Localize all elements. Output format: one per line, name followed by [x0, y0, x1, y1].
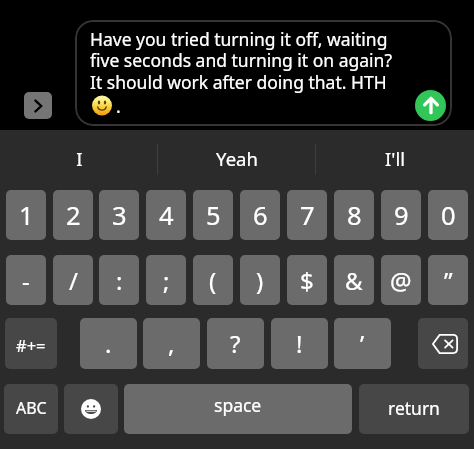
button[interactable]: I'll — [316, 130, 474, 187]
button[interactable]: Backspace — [418, 318, 468, 369]
staticText: space — [214, 393, 262, 417]
button[interactable]: 3 — [99, 190, 139, 240]
staticText: : — [116, 264, 123, 297]
button[interactable]: 2 — [53, 190, 93, 240]
staticText: / — [69, 264, 78, 297]
button[interactable]: space — [124, 384, 352, 434]
staticText: I'll — [385, 146, 405, 171]
staticText: . — [116, 94, 121, 118]
button[interactable]: Send — [415, 90, 446, 121]
button[interactable]: ABC — [4, 384, 58, 434]
staticText: 2 — [66, 198, 81, 233]
staticText: $ — [300, 264, 314, 297]
staticText: #+= — [16, 334, 46, 356]
button[interactable]: #+= — [5, 318, 57, 369]
staticText: @ — [390, 264, 412, 297]
button[interactable]: . — [80, 318, 137, 369]
staticText: . — [105, 327, 112, 360]
button[interactable]: - — [6, 255, 46, 305]
staticText: & — [345, 264, 363, 297]
button[interactable]: ’ — [334, 318, 391, 369]
button[interactable]: 0 — [428, 190, 468, 240]
button[interactable]: & — [334, 255, 374, 305]
staticText: ; — [163, 264, 170, 297]
staticText: Have you tried turning it off, waiting f… — [90, 27, 393, 94]
button[interactable]: 5 — [193, 190, 233, 240]
button[interactable]: 9 — [381, 190, 421, 240]
button[interactable]: I — [0, 130, 158, 187]
staticText: I — [76, 146, 83, 171]
button[interactable]: / — [53, 255, 93, 305]
button[interactable]: Emoji keyboard — [64, 384, 118, 434]
button[interactable]: 4 — [146, 190, 186, 240]
staticText: 4 — [159, 198, 174, 233]
staticText: 7 — [300, 198, 315, 233]
button[interactable]: ? — [207, 318, 264, 369]
staticText: ” — [444, 264, 453, 297]
button[interactable]: : — [99, 255, 139, 305]
staticText: - — [22, 264, 30, 297]
button[interactable]: ( — [193, 255, 233, 305]
staticText: 1 — [19, 198, 34, 233]
staticText: ) — [256, 264, 264, 297]
staticText: , — [168, 327, 175, 360]
staticText: ’ — [360, 327, 365, 360]
button[interactable]: @ — [381, 255, 421, 305]
staticText: 3 — [112, 198, 127, 233]
button[interactable]: ; — [146, 255, 186, 305]
staticText: 5 — [206, 198, 221, 233]
button[interactable]: return — [359, 384, 469, 434]
staticText: ? — [230, 327, 241, 360]
staticText: 6 — [253, 198, 268, 233]
staticText: ABC — [16, 397, 47, 419]
staticText: 0 — [441, 198, 456, 233]
staticText: ( — [209, 264, 217, 297]
button[interactable]: Expand toolbar — [24, 92, 52, 119]
staticText: Yeah — [216, 146, 258, 171]
staticText: ! — [296, 327, 303, 360]
button[interactable]: ! — [271, 318, 328, 369]
staticText: 9 — [394, 198, 409, 233]
button[interactable]: 8 — [334, 190, 374, 240]
button[interactable]: 7 — [287, 190, 327, 240]
button[interactable]: 1 — [6, 190, 46, 240]
button[interactable]: , — [143, 318, 200, 369]
button[interactable]: Yeah — [158, 130, 316, 187]
button[interactable]: ) — [240, 255, 280, 305]
staticText: return — [388, 396, 440, 420]
button[interactable]: $ — [287, 255, 327, 305]
button[interactable]: ” — [428, 255, 468, 305]
staticText: 8 — [347, 198, 362, 233]
button[interactable]: 6 — [240, 190, 280, 240]
